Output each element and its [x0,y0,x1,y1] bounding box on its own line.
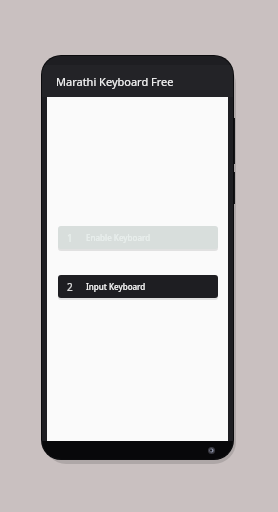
staticText: Marathi Keyboard Free [56,74,174,89]
staticText: Input Keyboard [86,281,146,292]
button[interactable]: 1 [58,226,218,249]
staticText: 2 [67,280,73,294]
button[interactable]: 2 [58,275,218,298]
staticText: Enable Keyboard [86,232,151,243]
staticText: 1 [67,231,73,245]
